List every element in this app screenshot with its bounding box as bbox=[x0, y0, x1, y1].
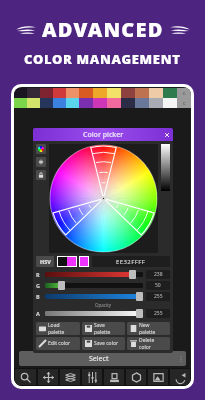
button[interactable]: Harmony bbox=[36, 157, 46, 167]
staticText: 50 bbox=[155, 282, 161, 289]
button[interactable] bbox=[14, 88, 27, 98]
staticText: G bbox=[36, 282, 45, 289]
button[interactable]: Image bbox=[148, 369, 168, 385]
button[interactable]: Wheel mode bbox=[36, 144, 46, 154]
staticText: A bbox=[36, 310, 45, 317]
button[interactable]: Load palette bbox=[36, 322, 80, 335]
button[interactable]: HSV bbox=[36, 256, 54, 267]
staticText: c bbox=[183, 90, 186, 97]
staticText: c bbox=[183, 100, 186, 107]
button[interactable]: Stamp bbox=[104, 369, 124, 385]
staticText: 255 bbox=[154, 310, 163, 317]
staticText: New palette bbox=[139, 322, 167, 335]
button[interactable]: R bbox=[36, 269, 170, 280]
staticText: Edit color bbox=[48, 340, 71, 347]
button[interactable]: Lock bbox=[36, 170, 46, 180]
button[interactable]: Redo bbox=[170, 369, 190, 385]
button[interactable]: c bbox=[177, 88, 191, 98]
button[interactable]: Zoom bbox=[15, 369, 36, 385]
button[interactable]: Save palette bbox=[82, 322, 125, 335]
button[interactable]: New palette bbox=[127, 322, 170, 335]
staticText: ADVANCED bbox=[42, 16, 164, 43]
staticText: B bbox=[36, 293, 45, 300]
staticText: R bbox=[36, 271, 45, 278]
button[interactable]: Color picker bbox=[33, 128, 173, 141]
staticText: Opacity bbox=[95, 302, 112, 308]
staticText: Save palette bbox=[94, 322, 122, 335]
staticText: Save color bbox=[94, 340, 119, 347]
staticText: HSV bbox=[40, 258, 51, 265]
staticText: COLOR MANAGEMENT bbox=[24, 50, 181, 68]
button[interactable]: EE32FFFF bbox=[92, 256, 170, 267]
button[interactable]: Save color bbox=[82, 337, 125, 350]
button[interactable]: Select bbox=[19, 351, 186, 366]
button[interactable]: Delete color bbox=[127, 337, 170, 350]
staticText: Select bbox=[89, 354, 109, 364]
button[interactable]: Edit color bbox=[36, 337, 80, 350]
button[interactable]: Close bbox=[163, 131, 170, 138]
staticText: 255 bbox=[154, 293, 163, 300]
button[interactable]: Move bbox=[38, 369, 58, 385]
button[interactable]: G bbox=[36, 280, 170, 291]
button[interactable]: Layers bbox=[60, 369, 80, 385]
staticText: EE32FFFF bbox=[116, 258, 146, 266]
button[interactable]: A bbox=[36, 308, 170, 319]
button[interactable]: c bbox=[177, 98, 191, 108]
staticText: Color picker bbox=[83, 130, 124, 140]
staticText: Delete color bbox=[139, 337, 167, 350]
button[interactable]: Shape bbox=[126, 369, 146, 385]
button[interactable]: B bbox=[36, 291, 170, 302]
staticText: Load palette bbox=[48, 322, 77, 335]
button[interactable]: Adjust bbox=[82, 369, 102, 385]
staticText: 238 bbox=[154, 271, 163, 278]
